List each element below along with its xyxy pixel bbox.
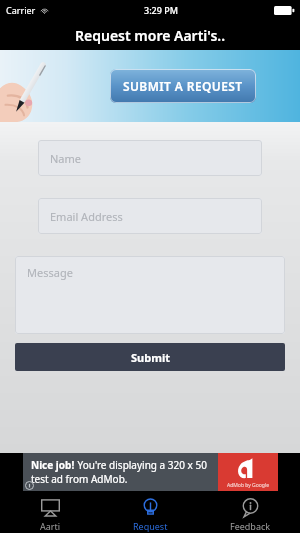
staticText: Carrier: [6, 4, 36, 16]
staticText: Request: [133, 520, 168, 532]
staticText: 3:29 PM: [144, 4, 178, 16]
staticText: You're displaying a 320 x 50: [75, 458, 207, 472]
staticText: Email Address: [50, 209, 123, 224]
button[interactable]: Aarti: [0, 494, 100, 532]
staticText: test ad from AdMob.: [31, 472, 128, 486]
staticText: Message: [27, 265, 73, 280]
staticText: Name: [50, 151, 82, 166]
button[interactable]: Message: [15, 256, 285, 334]
staticText: Submit: [131, 350, 170, 365]
button[interactable]: Feedback: [200, 494, 300, 532]
button[interactable]: Name: [38, 140, 262, 176]
staticText: Nice job!: [31, 458, 75, 472]
staticText: Request more Aarti's..: [75, 26, 226, 45]
button[interactable]: Submit: [15, 343, 285, 371]
staticText: Aarti: [40, 520, 61, 532]
staticText: AdMob by Google: [227, 482, 269, 489]
button[interactable]: Email Address: [38, 198, 262, 234]
button[interactable]: SUBMIT A REQUEST: [110, 69, 256, 103]
staticText: Feedback: [230, 520, 271, 532]
button[interactable]: Request: [100, 494, 200, 532]
button[interactable]: Nice job!: [23, 453, 278, 491]
staticText: SUBMIT A REQUEST: [123, 78, 243, 94]
